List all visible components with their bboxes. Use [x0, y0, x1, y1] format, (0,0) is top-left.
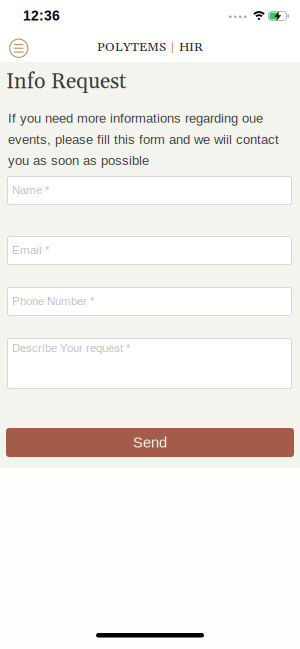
staticText: If you need more informations regarding …	[8, 111, 263, 125]
staticText: POLYTEMS	[97, 39, 166, 55]
staticText: events, please fill this form and we wii…	[8, 132, 279, 147]
button[interactable]: Menu	[9, 38, 28, 58]
staticText: HIR	[179, 39, 203, 55]
staticText: Send	[133, 434, 167, 451]
staticText: |	[170, 39, 175, 55]
staticText: Name *	[12, 183, 49, 196]
staticText: Info Request	[6, 68, 126, 96]
staticText: Describe Your request *	[12, 341, 130, 354]
staticText: 12:36	[23, 8, 60, 23]
staticText: Phone Number *	[12, 294, 94, 307]
button[interactable]: Describe Your request *	[7, 338, 292, 389]
button[interactable]: Name *	[7, 176, 292, 205]
button[interactable]: Send	[6, 428, 294, 457]
button[interactable]: Email *	[7, 236, 292, 265]
staticText: Email *	[12, 243, 49, 256]
button[interactable]: Phone Number *	[7, 287, 292, 316]
staticText: you as soon as possible	[8, 153, 149, 168]
